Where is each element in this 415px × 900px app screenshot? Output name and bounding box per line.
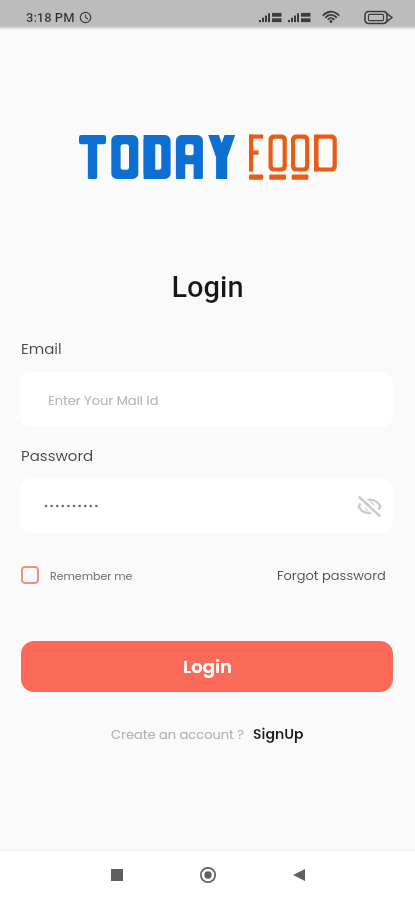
staticText: Create an account ?: [111, 725, 245, 743]
staticText: Login: [183, 654, 232, 679]
button[interactable]: Remember me: [21, 562, 133, 588]
button[interactable]: Recent apps: [71, 849, 162, 900]
button[interactable]: Enter Your Mail Id: [20, 372, 393, 427]
staticText: Password: [21, 445, 94, 466]
button[interactable]: Back: [253, 849, 344, 900]
staticText: Email: [21, 338, 62, 359]
staticText: Login: [0, 270, 415, 304]
button[interactable]: SignUp: [253, 724, 304, 744]
staticText: Enter Your Mail Id: [48, 391, 159, 409]
button[interactable]: Show password: [353, 490, 385, 522]
staticText: SignUp: [253, 724, 304, 744]
button[interactable]: Show password: [20, 478, 393, 533]
button[interactable]: Home: [162, 849, 253, 900]
button[interactable]: Login: [21, 641, 393, 692]
staticText: Remember me: [50, 568, 133, 583]
staticText: Forgot password: [277, 566, 386, 584]
staticText: 3:18 PM: [26, 10, 75, 25]
button[interactable]: Forgot password: [277, 562, 386, 588]
